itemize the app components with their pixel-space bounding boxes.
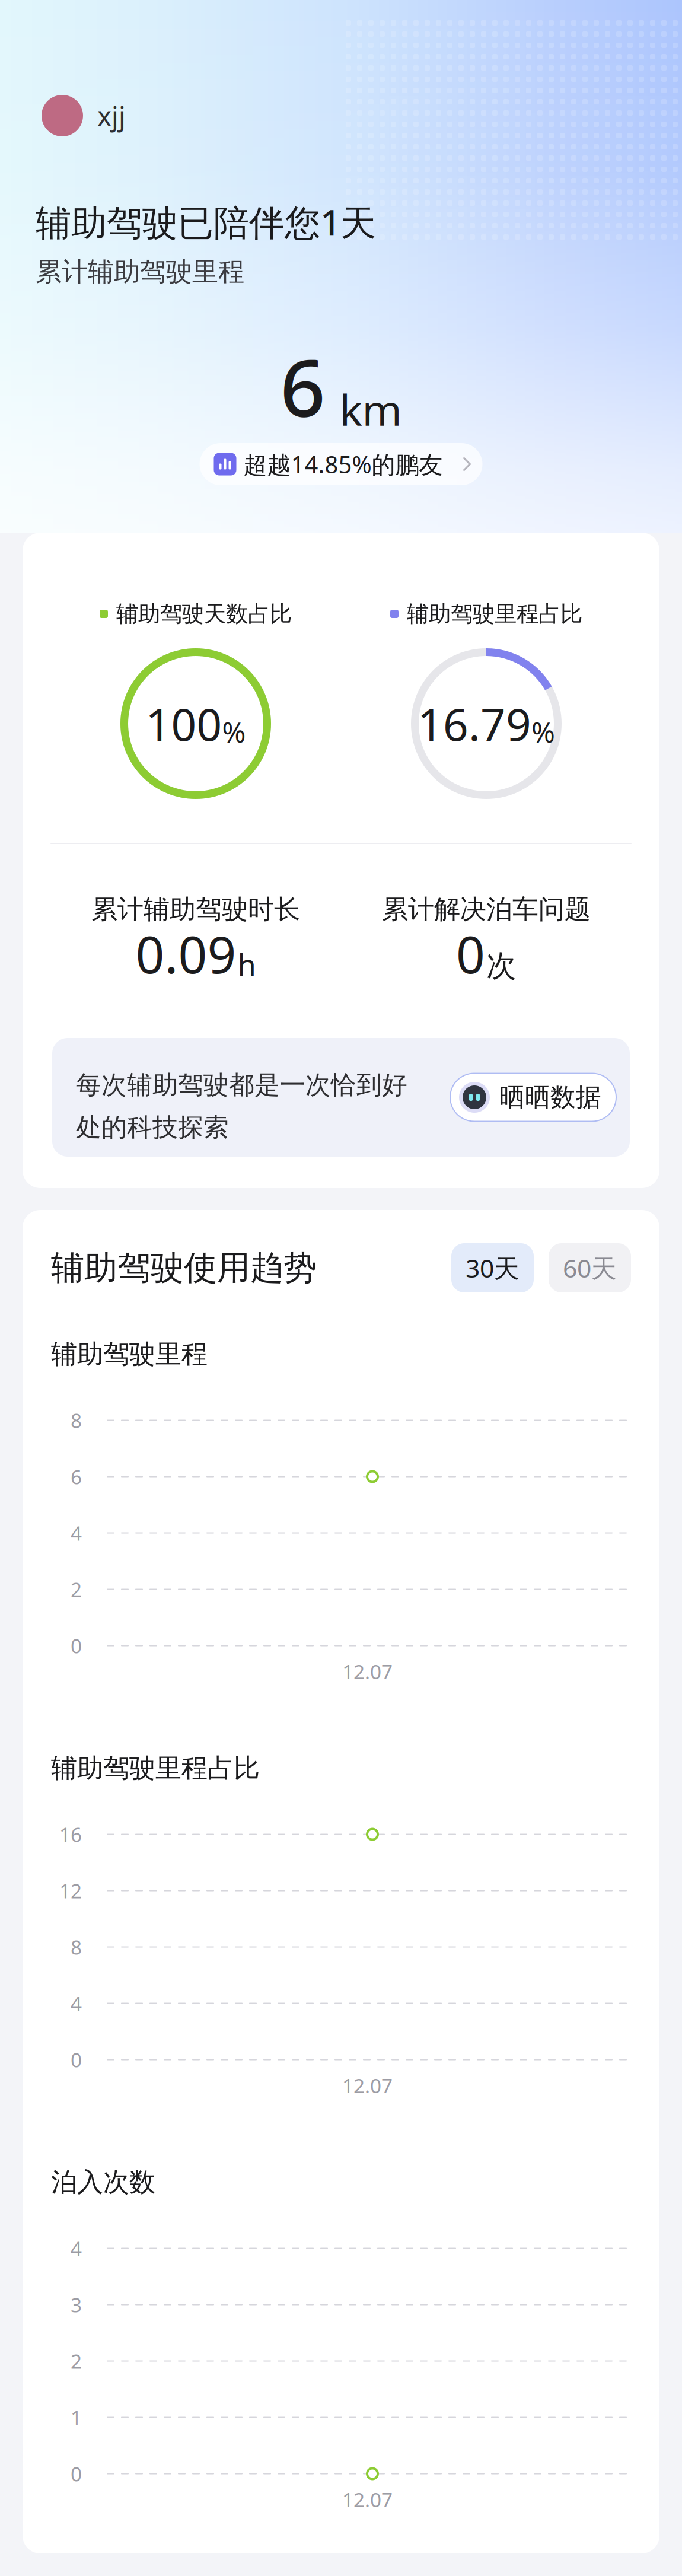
staticText: 处的科技探索 [76, 1112, 229, 1143]
staticText: 0.09 [136, 920, 236, 987]
button[interactable]: 超越14.85%的鹏友 [200, 443, 482, 485]
staticText: 累计辅助驾驶里程 [36, 256, 244, 288]
button[interactable]: 30天 [451, 1243, 534, 1292]
staticText: 0 [456, 920, 485, 987]
staticText: 8 [71, 1934, 82, 1960]
staticText: 8 [71, 1407, 82, 1433]
staticText: 0 [71, 1633, 82, 1659]
staticText: % [222, 713, 246, 751]
staticText: 16.79 [418, 694, 531, 753]
staticText: 辅助驾驶使用趋势 [51, 1247, 317, 1288]
staticText: % [531, 713, 555, 751]
staticText: 泊入次数 [51, 2166, 155, 2198]
staticText: xjj [97, 98, 126, 134]
staticText: 累计辅助驾驶时长 [91, 893, 300, 925]
staticText: 4 [71, 1990, 82, 2016]
staticText: 4 [71, 2235, 82, 2261]
staticText: 100 [146, 694, 222, 753]
staticText: 12 [59, 1878, 82, 1904]
staticText: 每次辅助驾驶都是一次恰到好 [76, 1069, 407, 1101]
staticText: 2 [71, 2348, 82, 2374]
staticText: 3 [71, 2292, 82, 2318]
staticText: 辅助驾驶已陪伴您1天 [36, 198, 376, 245]
staticText: 4 [71, 1520, 82, 1546]
button[interactable]: 60天 [549, 1243, 631, 1292]
staticText: 辅助驾驶里程 [51, 1338, 208, 1370]
staticText: 超越14.85%的鹏友 [243, 448, 443, 480]
staticText: 辅助驾驶里程占比 [407, 600, 582, 628]
staticText: 12.07 [342, 1658, 393, 1685]
staticText: 0 [71, 2047, 82, 2073]
staticText: 晒晒数据 [499, 1082, 601, 1113]
staticText: 60天 [563, 1251, 617, 1285]
staticText: 30天 [466, 1251, 520, 1285]
staticText: 16 [59, 1821, 82, 1847]
staticText: 累计解决泊车问题 [382, 893, 591, 925]
staticText: 1 [71, 2404, 82, 2431]
staticText: 辅助驾驶里程占比 [51, 1752, 260, 1784]
staticText: 0 [71, 2461, 82, 2487]
staticText: 次 [486, 947, 517, 984]
staticText: 6 [71, 1464, 82, 1490]
button[interactable]: 晒晒数据 [450, 1073, 617, 1122]
button[interactable]: xjj [0, 95, 682, 136]
staticText: 12.07 [342, 2486, 393, 2513]
staticText: 辅助驾驶天数占比 [116, 600, 292, 628]
staticText: 12.07 [342, 2072, 393, 2099]
staticText: 2 [71, 1576, 82, 1602]
staticText: 6 [280, 334, 325, 439]
staticText: km [340, 381, 402, 437]
staticText: h [238, 945, 256, 984]
